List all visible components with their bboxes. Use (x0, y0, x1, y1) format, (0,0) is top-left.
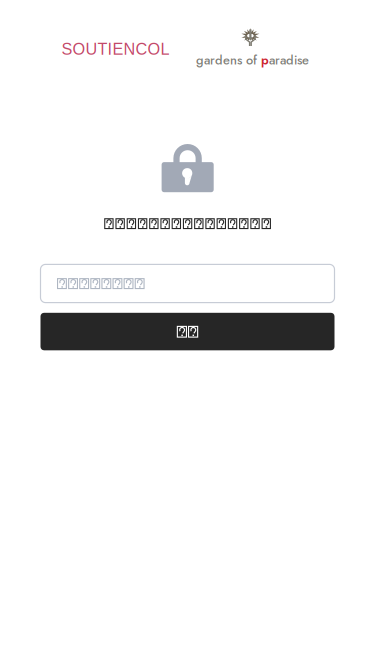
button[interactable]: Submit (40, 313, 334, 350)
button[interactable]: Password (40, 264, 334, 303)
staticText: SOUTIENCOL (61, 40, 169, 58)
staticText: aradise (269, 51, 309, 69)
staticText: gardens of (196, 51, 261, 69)
staticText: p (261, 51, 269, 69)
